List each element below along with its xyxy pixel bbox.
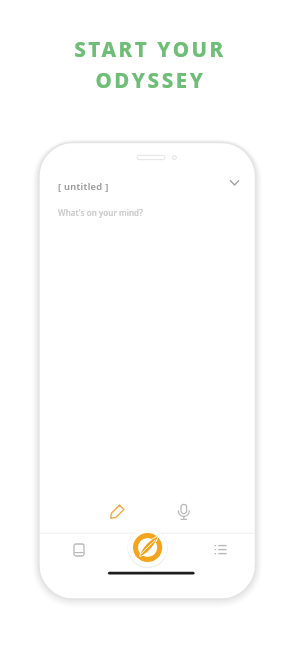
- staticText: ODYSSEY: [95, 66, 206, 94]
- staticText: What's on your mind?: [58, 207, 143, 218]
- button[interactable]: [170, 498, 197, 525]
- button[interactable]: [206, 540, 236, 562]
- button[interactable]: [64, 540, 94, 562]
- staticText: START YOUR: [74, 35, 226, 63]
- staticText: [ untitled ]: [58, 180, 109, 193]
- button[interactable]: [128, 528, 168, 568]
- button[interactable]: [225, 174, 245, 192]
- button[interactable]: [103, 498, 130, 525]
